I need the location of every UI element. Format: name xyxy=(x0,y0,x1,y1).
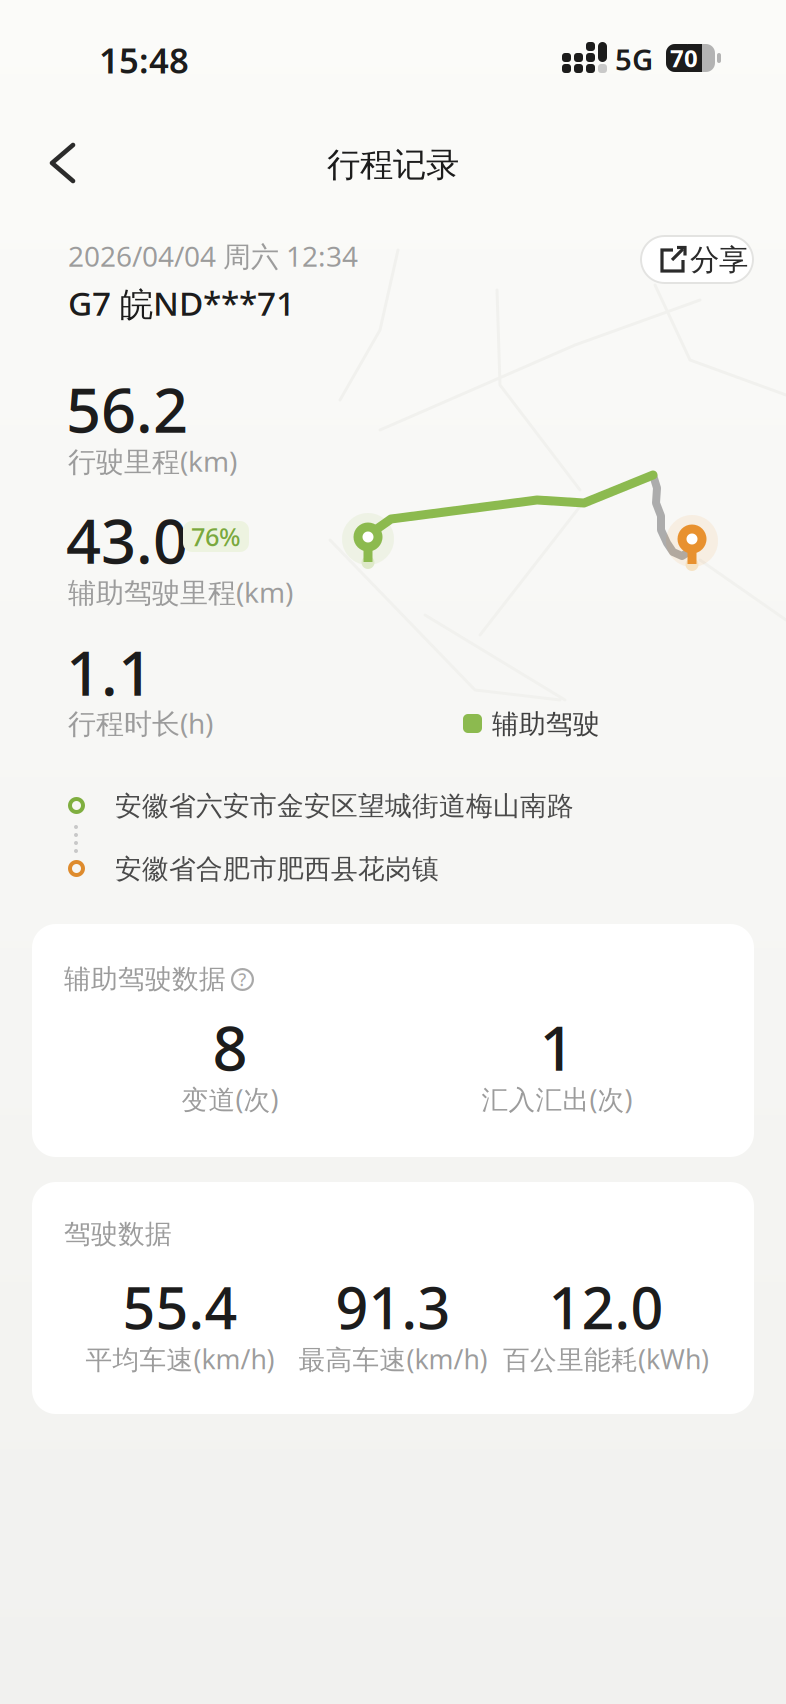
staticText: 91.3 xyxy=(335,1269,450,1345)
staticText: 2026/04/04 周六 12:34 xyxy=(68,237,358,275)
staticText: 5G xyxy=(615,39,653,78)
staticText: 辅助驾驶 xyxy=(492,708,600,740)
staticText: 安徽省合肥市肥西县花岗镇 xyxy=(115,853,439,885)
staticText: 百公里能耗(kWh) xyxy=(503,1341,709,1377)
staticText: 行驶里程(km) xyxy=(68,442,237,480)
staticText: ? xyxy=(238,968,246,991)
staticText: 76% xyxy=(191,520,241,553)
staticText: 分享 xyxy=(690,242,748,278)
button[interactable]: 辅助驾驶数据说明 xyxy=(231,968,254,991)
staticText: 安徽省六安市金安区望城街道梅山南路 xyxy=(115,790,574,822)
staticText: 1.1 xyxy=(66,631,153,713)
button[interactable]: 分享 xyxy=(640,235,754,284)
staticText: 43.0 xyxy=(66,499,188,581)
staticText: 辅助驾驶数据 xyxy=(64,963,226,995)
staticText: 70 xyxy=(670,42,698,74)
staticText: 辅助驾驶里程(km) xyxy=(68,573,293,611)
staticText: 12.0 xyxy=(548,1269,663,1345)
staticText: 8 xyxy=(212,1006,247,1088)
staticText: 汇入汇出(次) xyxy=(481,1081,632,1117)
staticText: 56.2 xyxy=(66,368,188,450)
staticText: 驾驶数据 xyxy=(64,1218,172,1250)
staticText: G7 皖ND***71 xyxy=(68,281,295,325)
staticText: 15:48 xyxy=(99,37,189,83)
staticText: 55.4 xyxy=(122,1269,237,1345)
button[interactable]: Back xyxy=(40,131,104,195)
staticText: 变道(次) xyxy=(181,1081,278,1117)
staticText: 1 xyxy=(539,1006,574,1088)
staticText: 行程时长(h) xyxy=(68,704,213,742)
staticText: 平均车速(km/h) xyxy=(85,1341,274,1377)
staticText: 行程记录 xyxy=(327,144,459,185)
staticText: 最高车速(km/h) xyxy=(298,1341,487,1377)
